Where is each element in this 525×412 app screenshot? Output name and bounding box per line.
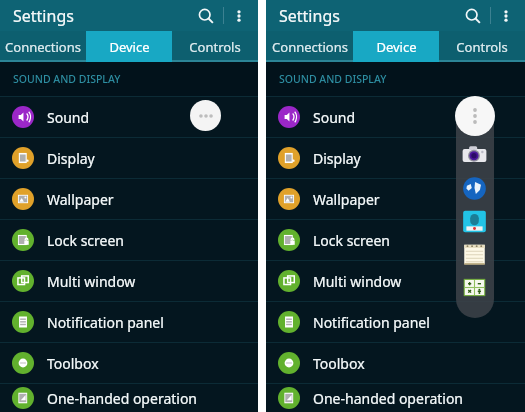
staticText: Device [109, 38, 150, 56]
staticText: Sound [47, 108, 90, 127]
staticText: Notification panel [313, 313, 430, 332]
staticText: Settings [13, 5, 74, 27]
button[interactable]: Connections [0, 31, 86, 62]
button[interactable]: More options [224, 1, 254, 31]
staticText: Toolbox [313, 354, 365, 373]
staticText: Display [47, 149, 95, 168]
staticText: Toolbox [47, 354, 99, 373]
staticText: Controls [189, 38, 241, 56]
staticText: Connections [272, 38, 348, 56]
button[interactable]: Notification panel [266, 302, 525, 342]
staticText: Sound [313, 108, 356, 127]
staticText: Settings [279, 5, 340, 27]
button[interactable]: Toolbox [0, 343, 258, 383]
staticText: Wallpaper [47, 190, 114, 209]
button[interactable]: Device [353, 31, 439, 62]
button[interactable]: calc [461, 274, 488, 301]
button[interactable]: Toolbox [190, 100, 221, 131]
staticText: Notification panel [47, 313, 164, 332]
staticText: Device [376, 38, 417, 56]
button[interactable]: Display [266, 138, 525, 178]
button[interactable]: memo [461, 241, 488, 268]
button[interactable]: Connections [266, 31, 353, 62]
staticText: Multi window [313, 272, 402, 291]
button[interactable]: Notification panel [0, 302, 258, 342]
button[interactable]: Controls [172, 31, 258, 62]
button[interactable]: Wallpaper [0, 179, 258, 219]
staticText: SOUND AND DISPLAY [279, 72, 387, 86]
staticText: Lock screen [47, 231, 125, 250]
button[interactable]: Multi window [266, 261, 525, 301]
button[interactable]: Display [0, 138, 258, 178]
staticText: Lock screen [313, 231, 391, 250]
button[interactable]: Search [456, 0, 490, 31]
button[interactable]: Multi window [0, 261, 258, 301]
staticText: Controls [456, 38, 508, 56]
button[interactable]: One-handed operation [266, 384, 525, 412]
button[interactable]: camera [461, 142, 488, 169]
staticText: Wallpaper [313, 190, 380, 209]
staticText: SOUND AND DISPLAY [13, 72, 121, 86]
button[interactable]: Sound [266, 97, 525, 137]
button[interactable]: Lock screen [266, 220, 525, 260]
button[interactable]: Wallpaper [266, 179, 525, 219]
staticText: Display [313, 149, 361, 168]
staticText: One-handed operation [313, 389, 464, 408]
staticText: Multi window [47, 272, 136, 291]
button[interactable]: More options [491, 1, 521, 31]
button[interactable]: One-handed operation [0, 384, 258, 412]
button[interactable]: internet [461, 175, 488, 202]
button[interactable]: Toolbox [266, 343, 525, 383]
button[interactable]: recorder [461, 208, 488, 235]
button[interactable]: Sound [0, 97, 258, 137]
staticText: One-handed operation [47, 389, 198, 408]
button[interactable]: Controls [439, 31, 525, 62]
button[interactable]: Search [189, 0, 223, 31]
button[interactable]: Device [86, 31, 172, 62]
staticText: Connections [5, 38, 81, 56]
button[interactable]: Close toolbox [455, 96, 495, 136]
button[interactable]: Lock screen [0, 220, 258, 260]
